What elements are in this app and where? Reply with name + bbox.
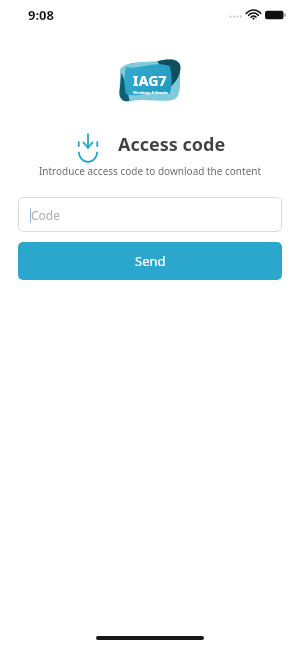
staticText: Code bbox=[31, 207, 60, 223]
button[interactable]: Code bbox=[18, 197, 282, 232]
staticText: Introduce access code to download the co… bbox=[0, 164, 300, 178]
staticText: 9:08 bbox=[28, 6, 54, 24]
staticText: Send bbox=[135, 252, 166, 270]
button[interactable]: Download bbox=[75, 131, 101, 157]
staticText: Access code bbox=[118, 132, 226, 157]
staticText: Meetings & Events bbox=[133, 90, 168, 95]
staticText: IAG7 bbox=[133, 71, 167, 90]
button[interactable]: Send bbox=[18, 242, 282, 280]
